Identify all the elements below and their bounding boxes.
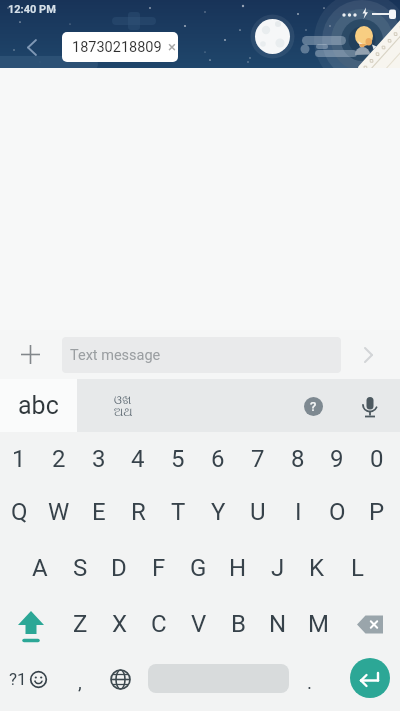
button[interactable]: M xyxy=(299,599,337,649)
button[interactable]: L xyxy=(338,543,376,593)
staticText: D xyxy=(111,554,127,582)
button[interactable]: W xyxy=(40,487,78,537)
button[interactable]: K xyxy=(298,543,336,593)
button[interactable]: ? xyxy=(304,397,323,416)
staticText: 5 xyxy=(171,445,185,473)
button[interactable] xyxy=(350,658,390,698)
button[interactable]: X xyxy=(101,599,139,649)
button[interactable]: P xyxy=(358,487,396,537)
button[interactable]: 7 xyxy=(239,434,277,484)
staticText: Q xyxy=(11,498,28,526)
button[interactable] xyxy=(352,339,384,371)
staticText: J xyxy=(271,554,285,582)
button[interactable]: U xyxy=(239,487,277,537)
button[interactable]: 9 xyxy=(318,434,356,484)
staticText: L xyxy=(351,554,364,582)
button[interactable]: 2 xyxy=(40,434,78,484)
staticText: Z xyxy=(73,610,88,638)
staticText: Y xyxy=(211,498,226,526)
button[interactable]: J xyxy=(259,543,297,593)
staticText: F xyxy=(152,554,166,582)
staticText: . xyxy=(307,671,313,693)
staticText: E xyxy=(92,498,106,526)
staticText: U xyxy=(250,498,266,526)
staticText: 4 xyxy=(131,445,145,473)
staticText: K xyxy=(309,554,325,582)
button[interactable]: . xyxy=(295,662,325,702)
button[interactable]: D xyxy=(100,543,138,593)
staticText: 9 xyxy=(330,445,344,473)
button[interactable]: Y xyxy=(199,487,237,537)
button[interactable]: S xyxy=(61,543,99,593)
button[interactable]: H xyxy=(219,543,257,593)
staticText: V xyxy=(191,610,207,638)
staticText: 1 xyxy=(12,445,26,473)
staticText: X xyxy=(112,610,128,638)
staticText: N xyxy=(269,610,287,638)
button[interactable]: V xyxy=(180,599,218,649)
button[interactable] xyxy=(357,394,383,422)
button[interactable]: ?1 xyxy=(6,659,58,699)
button[interactable] xyxy=(104,663,136,695)
staticText: abc xyxy=(18,391,59,420)
staticText: 3 xyxy=(92,445,106,473)
button[interactable]: 3 xyxy=(80,434,118,484)
staticText: M xyxy=(308,610,329,638)
staticText: P xyxy=(369,498,385,526)
staticText: B xyxy=(231,610,246,638)
staticText: 7 xyxy=(251,445,265,473)
staticText: 6 xyxy=(211,445,225,473)
staticText: W xyxy=(48,498,70,526)
staticText: R xyxy=(131,498,146,526)
staticText: ? xyxy=(310,399,317,414)
staticText: O xyxy=(329,498,346,526)
button[interactable]: A xyxy=(21,543,59,593)
staticText: Text message xyxy=(70,347,161,364)
staticText: ଓଖ ଅଥ xyxy=(114,394,133,418)
button[interactable] xyxy=(10,606,52,650)
staticText: 12:40 PM xyxy=(8,3,56,16)
button[interactable]: 8 xyxy=(279,434,317,484)
button[interactable]: N xyxy=(259,599,297,649)
button[interactable]: 4 xyxy=(119,434,157,484)
button[interactable]: abc xyxy=(0,379,77,432)
button[interactable]: Q xyxy=(0,487,38,537)
staticText: × xyxy=(168,38,172,56)
staticText: 8 xyxy=(291,445,305,473)
button[interactable]: 0 xyxy=(358,434,396,484)
staticText: H xyxy=(229,554,247,582)
button[interactable] xyxy=(350,607,390,641)
button[interactable]: Text message xyxy=(62,337,341,373)
button[interactable]: I xyxy=(279,487,317,537)
button[interactable]: R xyxy=(119,487,157,537)
button[interactable]: ଓଖ ଅଥ xyxy=(85,379,162,432)
staticText: A xyxy=(32,554,48,582)
button[interactable]: 5 xyxy=(159,434,197,484)
staticText: 2 xyxy=(52,445,66,473)
staticText: G xyxy=(190,554,207,582)
button[interactable]: F xyxy=(140,543,178,593)
staticText: I xyxy=(295,498,302,526)
staticText: 0 xyxy=(370,445,384,473)
button[interactable]: O xyxy=(318,487,356,537)
button[interactable]: 18730218809 xyxy=(62,32,178,62)
button[interactable]: E xyxy=(80,487,118,537)
button[interactable]: 6 xyxy=(199,434,237,484)
button[interactable]: C xyxy=(140,599,178,649)
button[interactable] xyxy=(14,338,46,370)
staticText: C xyxy=(151,610,167,638)
button[interactable]: 1 xyxy=(0,434,38,484)
staticText: , xyxy=(78,671,82,693)
staticText: T xyxy=(171,498,186,526)
button[interactable]: , xyxy=(65,662,95,702)
button[interactable]: G xyxy=(179,543,217,593)
staticText: 18730218809 xyxy=(72,39,162,56)
staticText: S xyxy=(73,554,88,582)
staticText: ?1 xyxy=(9,669,27,689)
button[interactable]: T xyxy=(159,487,197,537)
button[interactable]: Z xyxy=(61,599,99,649)
button[interactable]: B xyxy=(219,599,257,649)
